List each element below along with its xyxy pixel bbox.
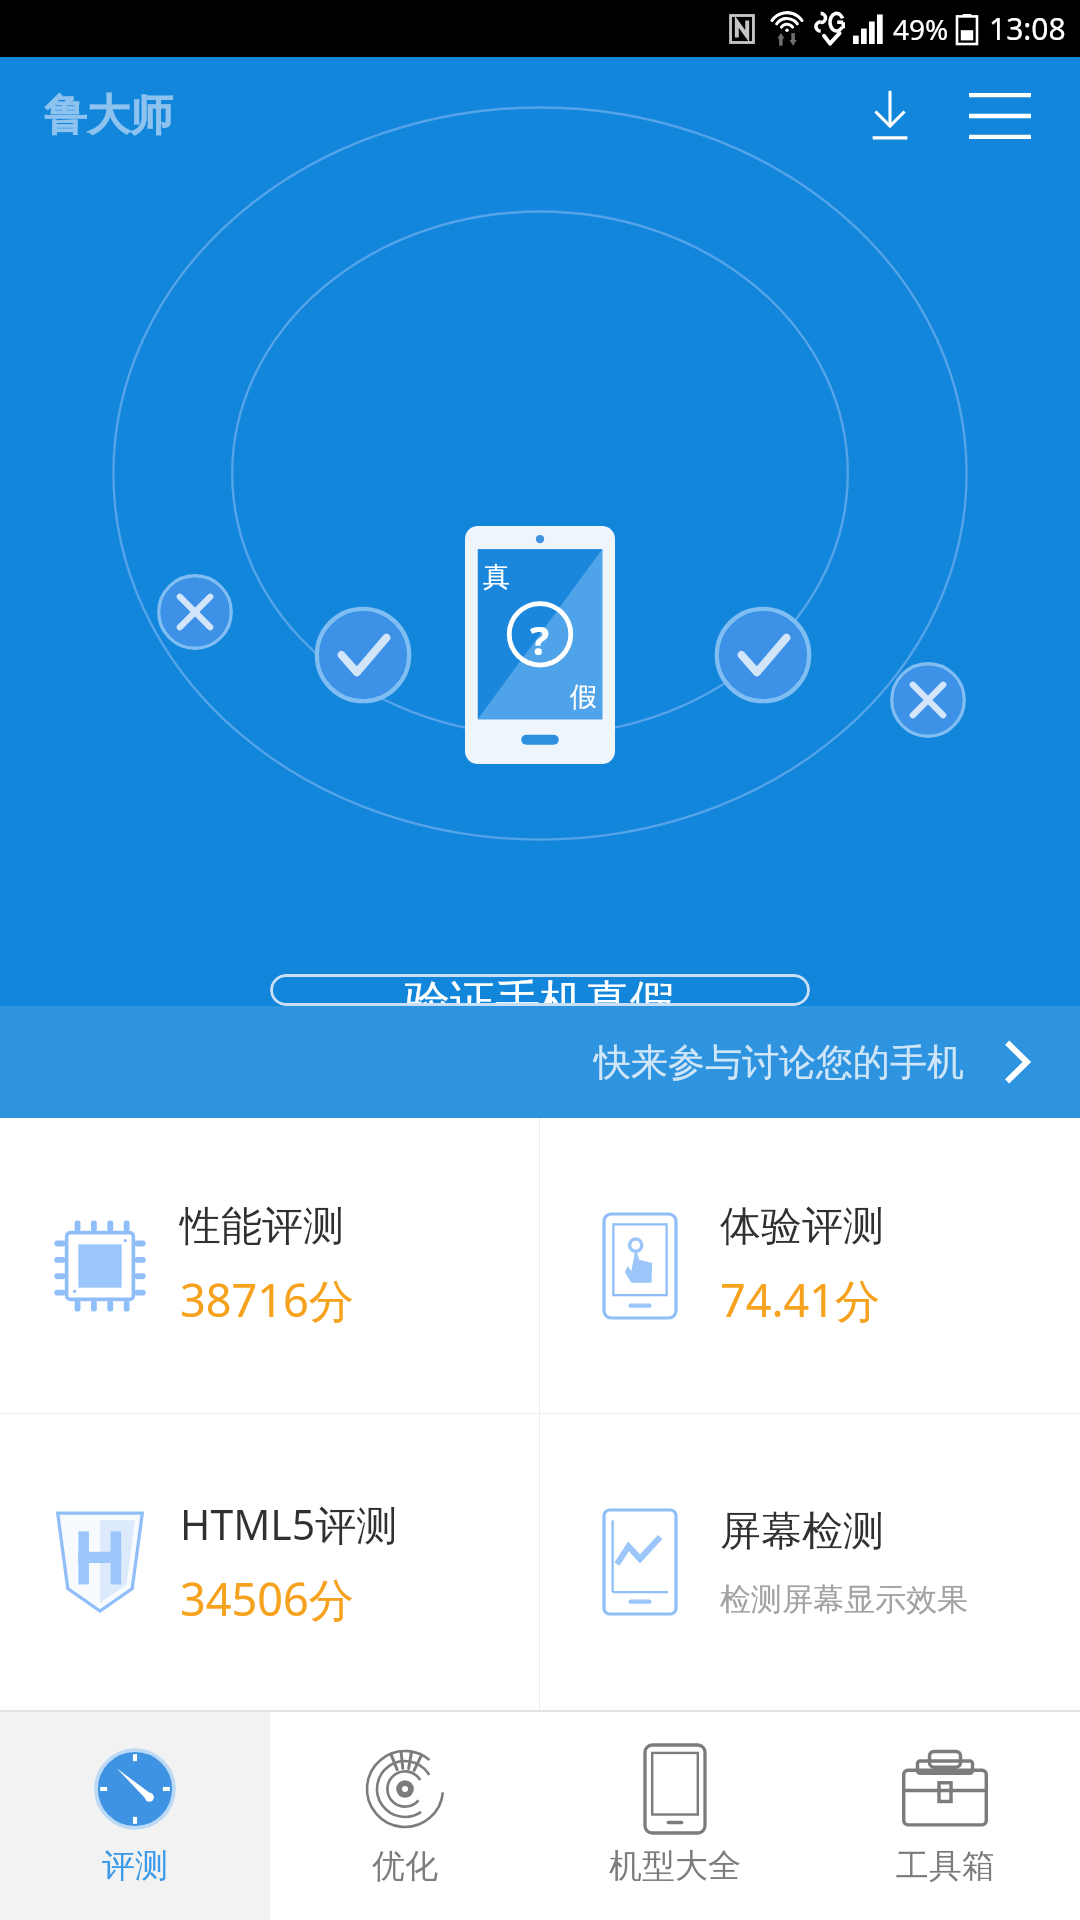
staticText: 体验评测 bbox=[720, 1201, 884, 1253]
staticText: 工具箱 bbox=[896, 1845, 995, 1887]
button[interactable]: 性能评测 bbox=[0, 1118, 539, 1413]
staticText: 优化 bbox=[372, 1845, 438, 1887]
button[interactable]: 体验评测 bbox=[540, 1118, 1080, 1413]
staticText: 屏幕检测 bbox=[720, 1506, 884, 1558]
staticText: 鲁大师 bbox=[44, 89, 173, 143]
staticText: 34506分 bbox=[180, 1568, 354, 1629]
staticText: 性能评测 bbox=[180, 1201, 344, 1253]
button[interactable]: HTML5评测 bbox=[0, 1414, 539, 1710]
staticText: 检测屏幕显示效果 bbox=[720, 1580, 968, 1619]
button[interactable]: 优化 bbox=[270, 1712, 540, 1920]
button[interactable]: Menu bbox=[950, 66, 1050, 166]
staticText: ? bbox=[530, 612, 550, 666]
staticText: HTML5评测 bbox=[180, 1496, 398, 1552]
staticText: 13:08 bbox=[989, 8, 1066, 49]
button[interactable]: 评测 bbox=[0, 1712, 270, 1920]
staticText: 快来参与讨论您的手机 bbox=[594, 1039, 964, 1086]
button[interactable]: 工具箱 bbox=[810, 1712, 1080, 1920]
staticText: 38716分 bbox=[180, 1269, 354, 1330]
button[interactable]: Download bbox=[840, 66, 940, 166]
staticText: 74.41分 bbox=[720, 1269, 881, 1330]
button[interactable]: 屏幕检测 bbox=[540, 1414, 1080, 1710]
button[interactable]: 验证手机真假 bbox=[270, 974, 810, 1006]
staticText: 机型大全 bbox=[609, 1845, 741, 1887]
staticText: 假 bbox=[570, 680, 597, 714]
staticText: 真 bbox=[483, 560, 510, 594]
staticText: 评测 bbox=[102, 1845, 168, 1887]
staticText: 验证手机真假 bbox=[405, 974, 675, 1006]
staticText: 49% bbox=[893, 10, 949, 48]
button[interactable]: 快来参与讨论您的手机 bbox=[0, 1006, 1080, 1118]
button[interactable]: 机型大全 bbox=[540, 1712, 810, 1920]
